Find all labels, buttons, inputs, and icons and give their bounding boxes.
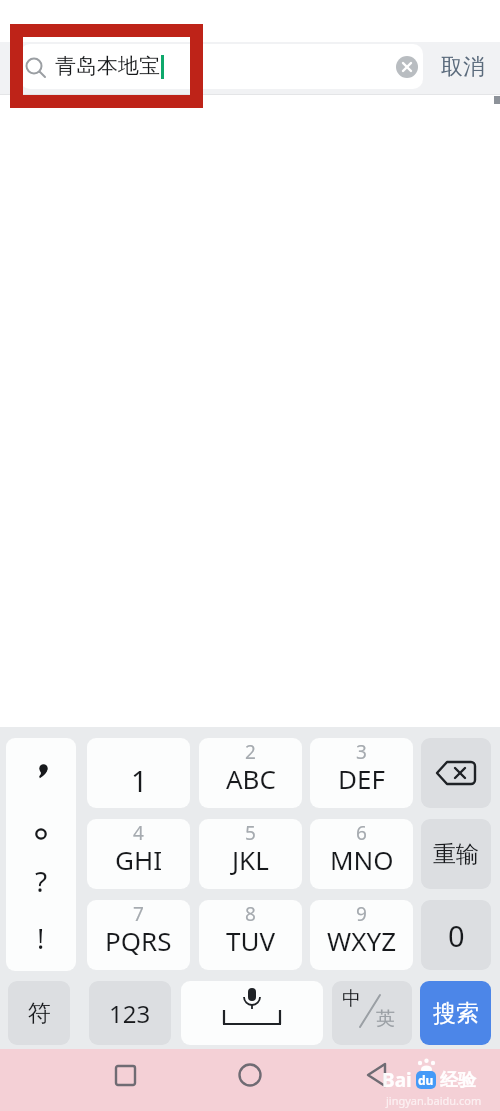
staticText: 3: [356, 739, 367, 765]
staticText: TUV: [226, 923, 276, 958]
staticText: 8: [245, 901, 256, 927]
staticText: 2: [245, 739, 256, 765]
button[interactable]: 7: [87, 900, 190, 970]
staticText: ABC: [226, 761, 276, 796]
staticText: 中: [342, 987, 361, 1011]
button[interactable]: [421, 738, 491, 808]
staticText: 青岛本地宝: [55, 53, 160, 79]
button[interactable]: [106, 1056, 144, 1094]
button[interactable]: 青岛本地宝: [20, 44, 423, 89]
staticText: 搜索: [433, 999, 479, 1028]
staticText: 7: [133, 901, 144, 927]
staticText: du: [418, 1072, 434, 1088]
button[interactable]: 符: [8, 981, 70, 1045]
button[interactable]: 重输: [421, 819, 491, 889]
staticText: JKL: [232, 842, 269, 877]
staticText: 9: [356, 901, 367, 927]
button[interactable]: 8: [199, 900, 302, 970]
staticText: 123: [109, 997, 151, 1030]
staticText: 1: [131, 761, 148, 800]
staticText: 英: [376, 1007, 395, 1031]
button[interactable]: 取消: [430, 44, 496, 90]
button[interactable]: 0: [421, 900, 491, 970]
staticText: 经验: [440, 1069, 476, 1092]
staticText: MNO: [330, 842, 394, 877]
button[interactable]: 123: [89, 981, 171, 1045]
button[interactable]: 3: [310, 738, 413, 808]
button[interactable]: 中: [332, 981, 412, 1045]
staticText: GHI: [115, 842, 163, 877]
button[interactable]: 2: [199, 738, 302, 808]
staticText: 6: [356, 820, 367, 846]
button[interactable]: [181, 981, 323, 1045]
staticText: 5: [245, 820, 256, 846]
button[interactable]: 5: [199, 819, 302, 889]
button[interactable]: 6: [310, 819, 413, 889]
button[interactable]: 1: [87, 738, 190, 808]
staticText: Bai: [382, 1067, 412, 1093]
staticText: ?: [35, 862, 48, 900]
button[interactable]: [231, 1056, 269, 1094]
button[interactable]: [396, 56, 418, 78]
button[interactable]: 9: [310, 900, 413, 970]
button[interactable]: 4: [87, 819, 190, 889]
staticText: DEF: [338, 761, 385, 796]
staticText: 重输: [433, 840, 479, 869]
staticText: jingyan.baidu.com: [386, 1093, 482, 1108]
staticText: !: [37, 920, 45, 957]
button[interactable]: [358, 1056, 396, 1094]
staticText: 0: [448, 916, 465, 955]
staticText: 取消: [441, 53, 485, 81]
button[interactable]: ?: [6, 738, 76, 971]
staticText: PQRS: [105, 923, 172, 958]
staticText: WXYZ: [327, 923, 397, 958]
staticText: 4: [133, 820, 144, 846]
staticText: 符: [28, 999, 51, 1028]
button[interactable]: 搜索: [420, 981, 491, 1045]
